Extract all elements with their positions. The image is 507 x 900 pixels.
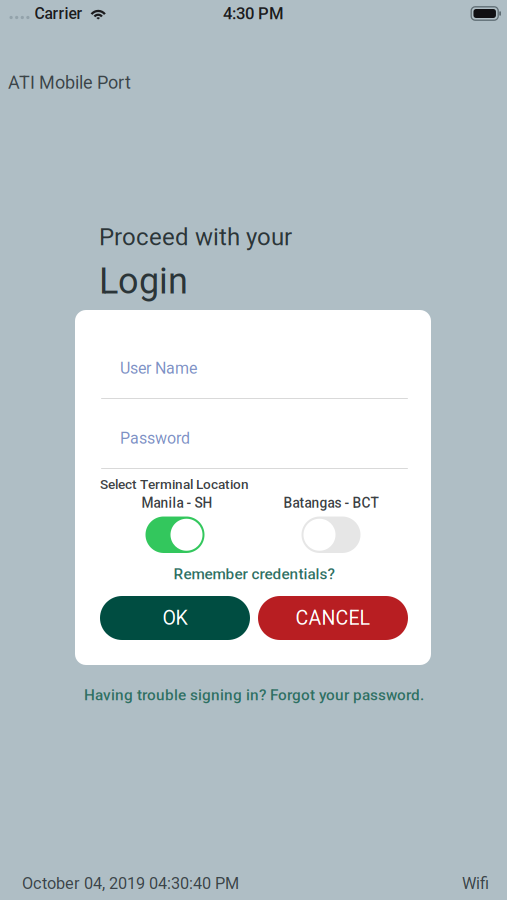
button[interactable]: Manila - SH xyxy=(100,496,254,551)
staticText: Select Terminal Location xyxy=(100,476,249,492)
staticText: Wifi xyxy=(462,874,489,893)
button[interactable]: Batangas - BCT xyxy=(254,496,408,551)
staticText: ATI Mobile Port xyxy=(8,72,131,93)
staticText: 4:30 PM xyxy=(223,4,284,23)
staticText: Proceed with your xyxy=(99,223,292,251)
staticText: User Name xyxy=(120,359,197,378)
button[interactable]: Password xyxy=(99,429,405,469)
staticText: Batangas - BCT xyxy=(283,495,378,511)
staticText: OK xyxy=(162,606,187,629)
staticText: Remember credentials? xyxy=(173,565,334,583)
button[interactable]: User Name xyxy=(99,359,405,399)
staticText: Carrier xyxy=(34,4,82,23)
staticText: CANCEL xyxy=(295,606,370,629)
staticText: Password xyxy=(120,429,190,448)
button[interactable]: OK xyxy=(100,596,250,640)
button[interactable]: Having trouble signing in? Forgot your p… xyxy=(76,684,432,706)
staticText: Login xyxy=(99,260,188,302)
button[interactable]: Remember credentials? xyxy=(100,564,408,584)
staticText: October 04, 2019 04:30:40 PM xyxy=(22,874,239,893)
staticText: Having trouble signing in? Forgot your p… xyxy=(84,686,424,704)
button[interactable]: CANCEL xyxy=(258,596,408,640)
staticText: Manila - SH xyxy=(141,495,212,511)
